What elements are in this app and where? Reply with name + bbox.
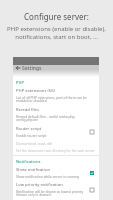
staticText: Reread files: [16, 107, 39, 113]
staticText: PHP extensions (56): [16, 88, 55, 94]
staticText: Document root dir: [16, 141, 53, 147]
button[interactable]: Toggle Router script: [87, 127, 96, 136]
staticText: Configure server:: [24, 11, 89, 22]
button[interactable]: PHP extensions (56): [13, 86, 99, 105]
button[interactable]: Show notification: [13, 165, 99, 180]
staticText: Router script: [16, 126, 42, 132]
button[interactable]: Toggle Low priority notification: [87, 185, 96, 194]
staticText: Notifications: [16, 159, 41, 164]
staticText: Low priority notification: [16, 182, 63, 188]
button[interactable]: Document root dir: [13, 139, 99, 154]
staticText: Show notification while server is runnin…: [16, 174, 79, 178]
staticText: Settings: [22, 65, 42, 71]
staticText: PHP extensions (enable or disable), noti…: [7, 25, 106, 41]
button[interactable]: Toggle Show notification: [87, 168, 96, 177]
staticText: PHP: [16, 80, 24, 85]
button[interactable]: Reread files: [13, 105, 99, 124]
button[interactable]: Back: [13, 65, 22, 71]
button[interactable]: Low priority notification: [13, 180, 99, 199]
button[interactable]: Router script: [13, 124, 99, 139]
staticText: Enable router script: [16, 133, 47, 137]
staticText: List of all PHP extensions, part of them…: [16, 95, 96, 103]
staticText: Show notification: [16, 167, 51, 173]
staticText: Set the document root directory for the …: [16, 148, 95, 152]
staticText: Notification will be shown as lowest pri…: [16, 189, 85, 197]
staticText: Reread default files - useful make.php, …: [16, 114, 96, 122]
